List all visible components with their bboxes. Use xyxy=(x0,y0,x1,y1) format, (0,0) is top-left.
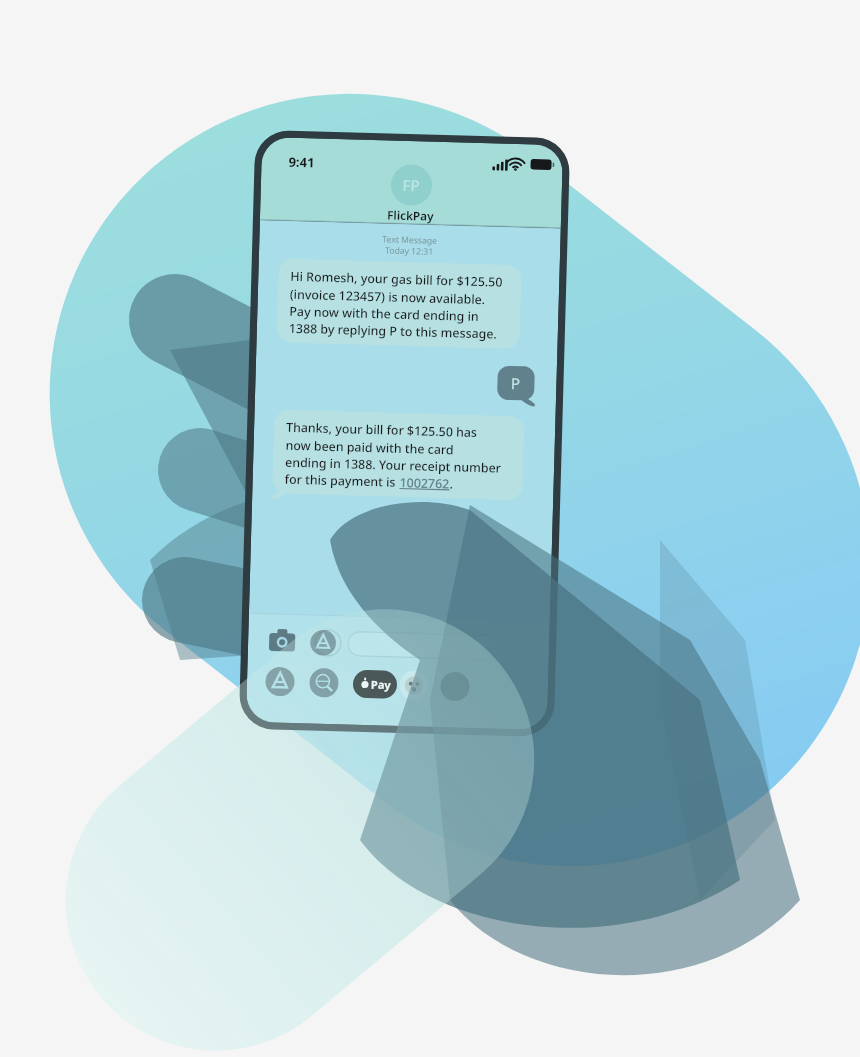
button[interactable]: FlickPay SMS payment illustration xyxy=(0,0,860,1057)
